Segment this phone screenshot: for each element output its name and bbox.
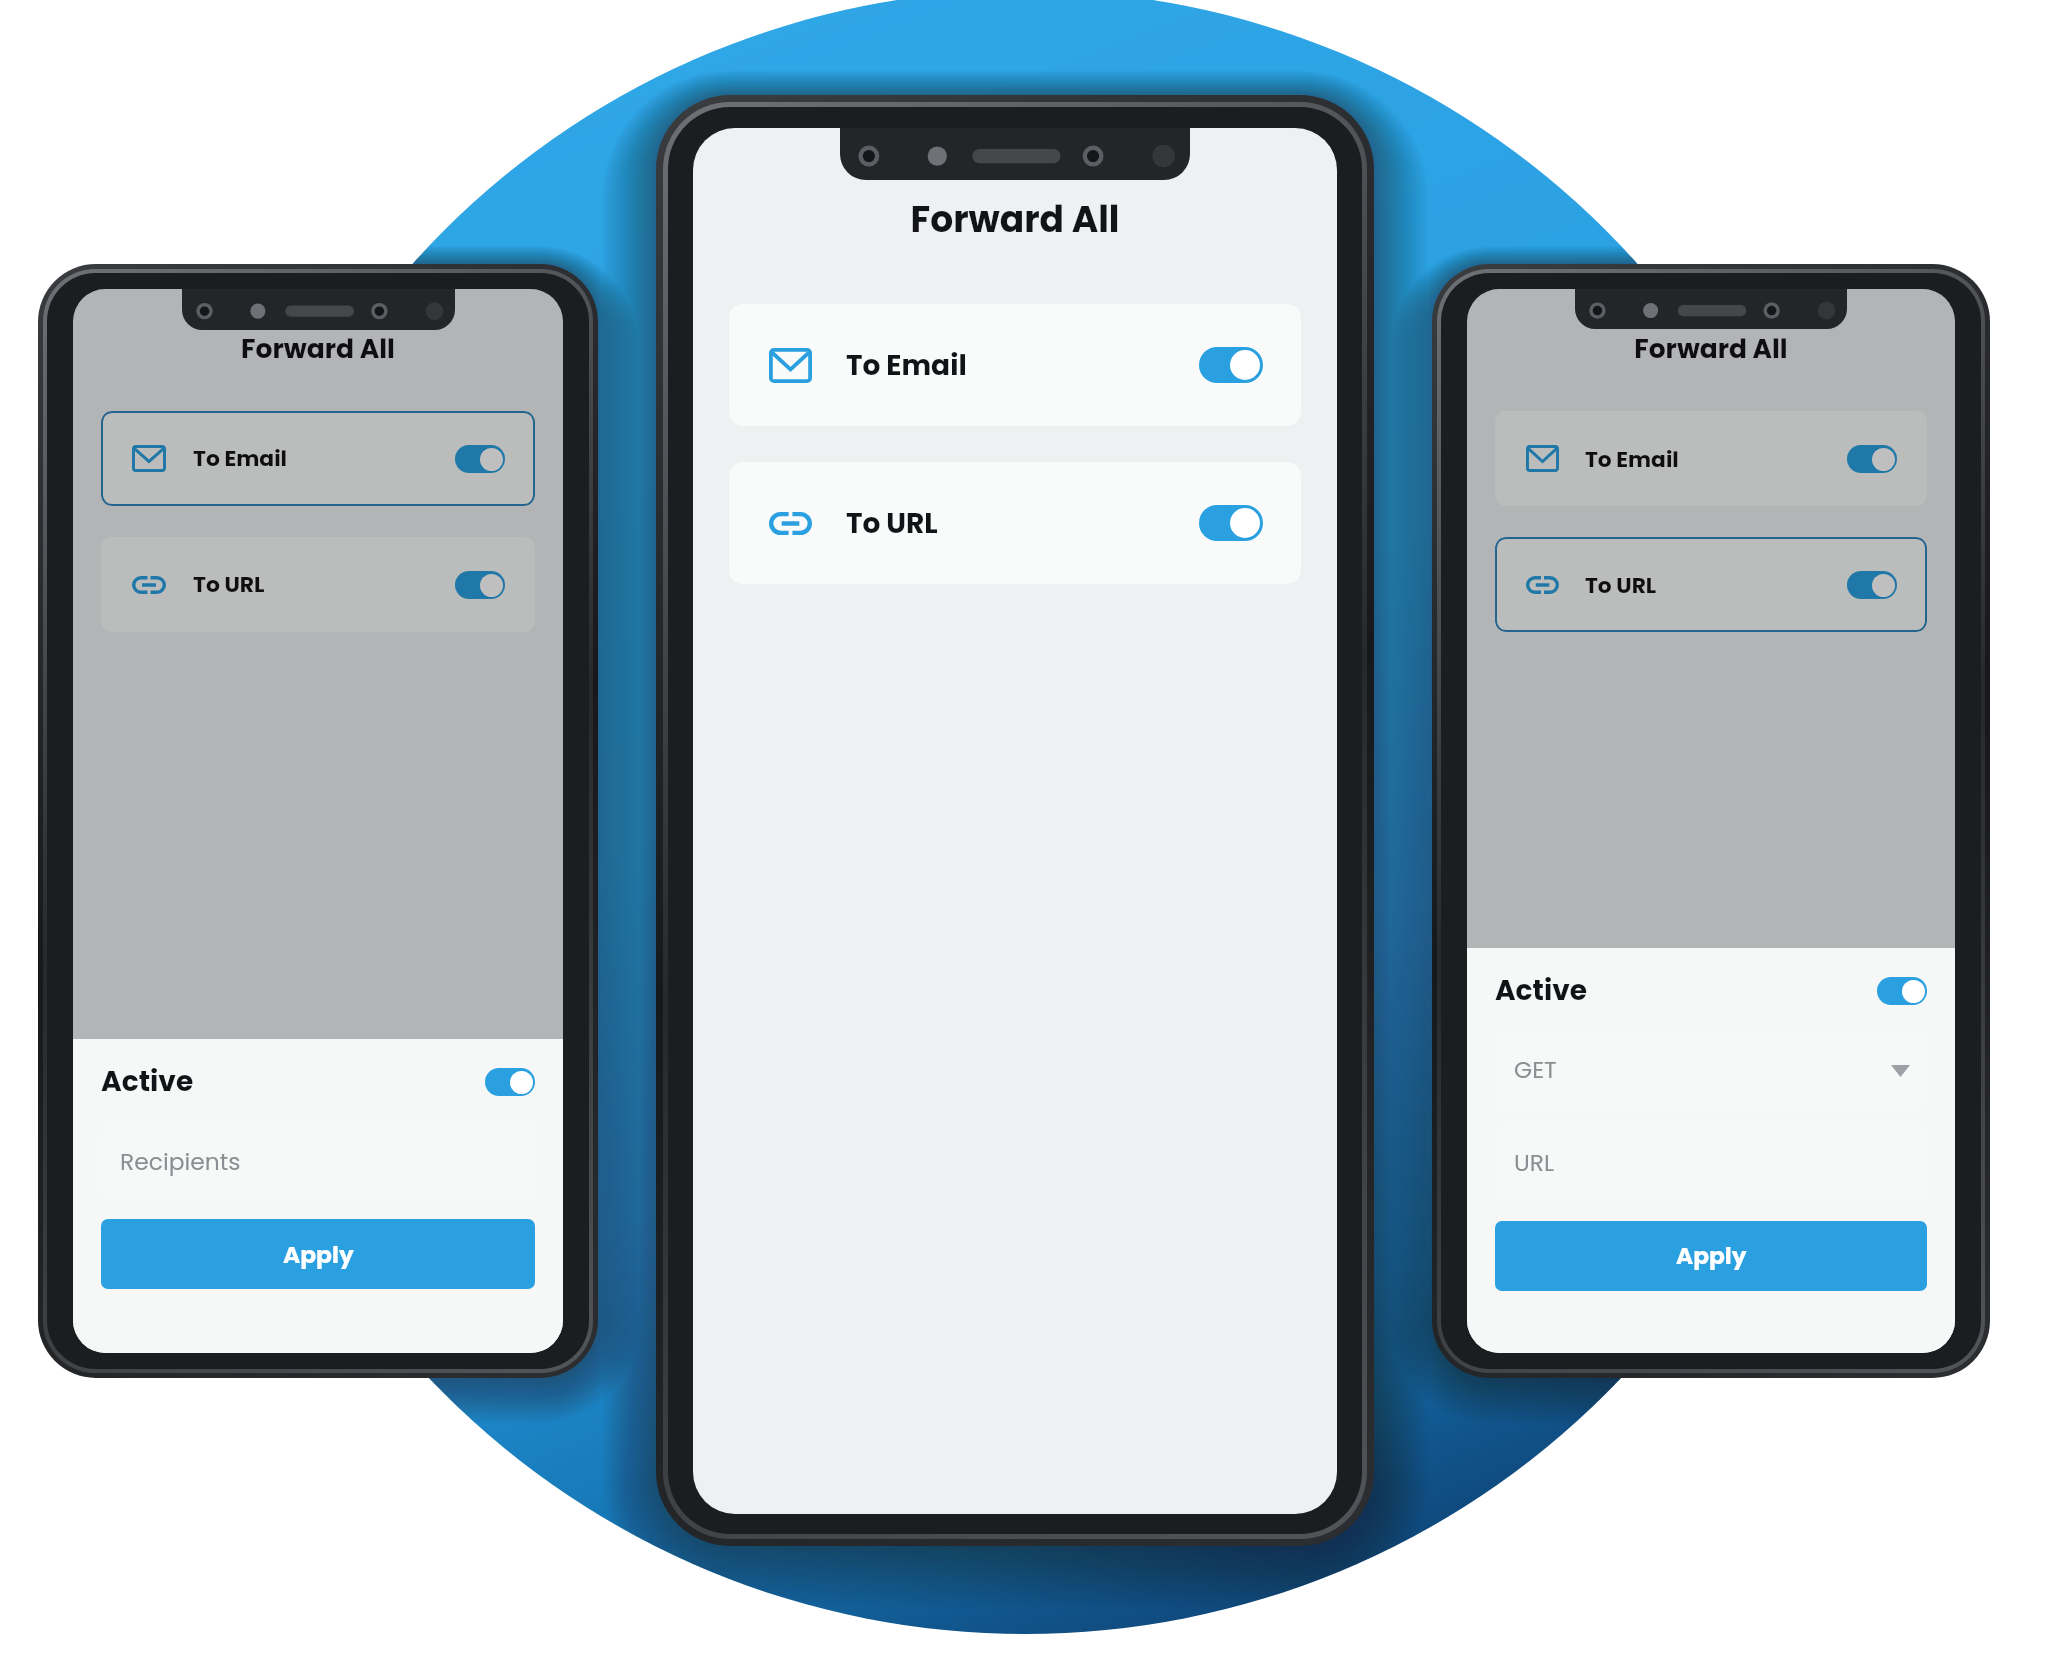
staticText: URL — [1514, 1147, 1554, 1180]
button[interactable]: Toggle To Email, on — [1847, 445, 1897, 473]
button[interactable]: Toggle To Email, on — [455, 445, 505, 473]
staticText: To Email — [846, 346, 967, 385]
button[interactable]: To Email — [729, 304, 1301, 426]
staticText: To URL — [846, 504, 938, 543]
button[interactable]: Toggle To URL, on — [1847, 571, 1897, 599]
staticText: Active — [101, 1062, 194, 1101]
button[interactable]: To Email — [1495, 411, 1927, 506]
button[interactable]: Recipients — [101, 1123, 535, 1200]
staticText: Forward All — [693, 194, 1337, 244]
button[interactable]: To URL — [729, 462, 1301, 584]
staticText: To URL — [193, 569, 265, 600]
button[interactable]: URL — [1495, 1125, 1927, 1202]
button[interactable]: To Email — [101, 411, 535, 506]
staticText: Apply — [1676, 1240, 1747, 1273]
button[interactable]: To URL — [1495, 537, 1927, 632]
staticText: GET — [1514, 1054, 1557, 1087]
staticText: Recipients — [120, 1145, 241, 1178]
staticText: To Email — [193, 443, 288, 474]
button[interactable]: Apply — [101, 1219, 535, 1289]
staticText: To Email — [1585, 444, 1679, 474]
staticText: To URL — [1585, 570, 1657, 600]
button[interactable]: Toggle To URL, on — [455, 571, 505, 599]
staticText: Apply — [283, 1238, 354, 1271]
button[interactable]: Apply — [1495, 1221, 1927, 1291]
button[interactable]: Toggle To URL, on — [1199, 505, 1263, 541]
button[interactable]: To URL — [101, 537, 535, 632]
button[interactable]: Toggle To Email, on — [1199, 347, 1263, 383]
button[interactable]: GET — [1495, 1032, 1927, 1109]
staticText: Forward All — [73, 330, 563, 367]
staticText: Forward All — [1467, 330, 1955, 367]
button[interactable]: Toggle Active, on — [1877, 977, 1927, 1005]
button[interactable]: Toggle Active, on — [485, 1068, 535, 1096]
staticText: Active — [1495, 971, 1587, 1010]
